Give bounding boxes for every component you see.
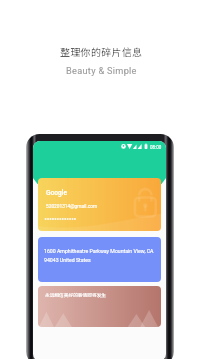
staticText: 08:00 <box>150 145 162 150</box>
staticText: 1600 Amphitheatre Parkway Mountain View,… <box>44 248 154 254</box>
staticText: Google <box>46 189 67 197</box>
button[interactable]: Google <box>38 178 161 231</box>
staticText: 94043 United States <box>44 257 91 263</box>
button[interactable]: 1600 Amphitheatre Parkway Mountain View,… <box>38 237 161 282</box>
staticText: 整理你的碎片信息 <box>60 44 143 58</box>
button[interactable]: 永远相信美好的事情即将发生 <box>38 286 161 327</box>
staticText: 永远相信美好的事情即将发生 <box>45 292 106 299</box>
staticText: Beauty & Simple <box>66 65 137 76</box>
staticText: 520201314@gmail.com <box>46 204 98 210</box>
